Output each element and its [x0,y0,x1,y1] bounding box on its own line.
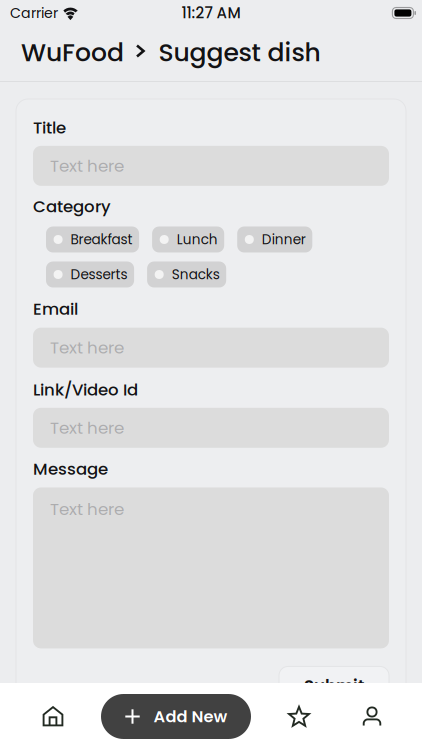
button[interactable]: Home [28,688,78,744]
button[interactable]: Dinner [237,226,312,252]
staticText: Title [33,116,66,139]
button[interactable]: Breakfast [46,226,139,252]
staticText: Link/Video Id [33,378,138,401]
staticText: Text here [50,497,124,521]
staticText: Lunch [177,230,218,249]
button[interactable]: Lunch [152,226,224,252]
staticText: 11:27 AM [181,2,240,24]
button[interactable]: Profile [347,688,397,744]
staticText: Suggest dish [158,35,320,70]
staticText: Carrier [10,3,58,23]
staticText: Breakfast [71,230,133,249]
staticText: WuFood [21,35,124,70]
staticText: Dinner [262,230,306,249]
button[interactable]: Desserts [46,261,134,287]
staticText: Category [33,195,111,218]
staticText: Text here [50,416,124,439]
staticText: Text here [50,154,124,177]
staticText: Text here [50,336,124,359]
button[interactable]: Favorites [274,688,324,744]
button[interactable]: Snacks [147,261,226,287]
staticText: Desserts [71,265,128,284]
staticText: Message [33,457,108,480]
staticText: Add New [153,705,227,728]
staticText: Submit [304,675,364,698]
staticText: Email [33,297,78,321]
button[interactable]: Submit [279,666,389,706]
button[interactable]: Add New [101,694,251,739]
staticText: Snacks [172,265,220,284]
